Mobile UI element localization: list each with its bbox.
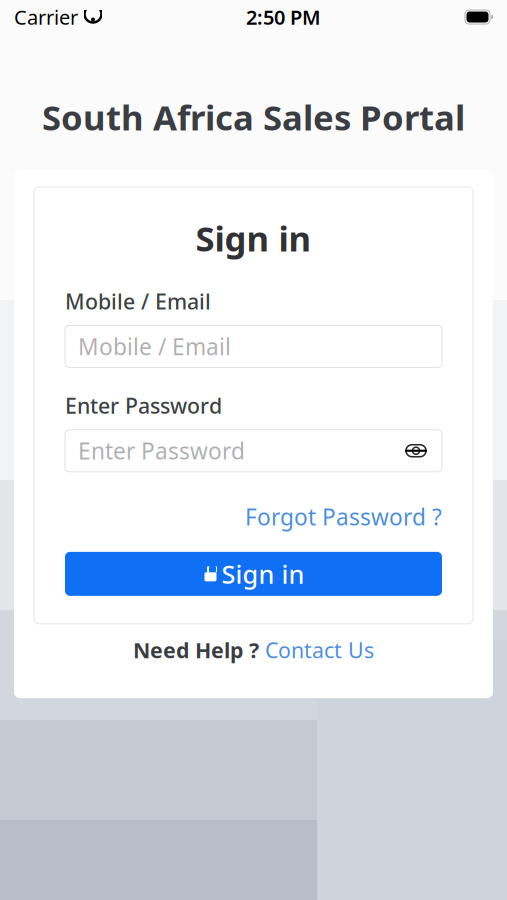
staticText: Carrier <box>14 4 78 30</box>
staticText: Sign in <box>195 215 311 261</box>
button[interactable]: Show password <box>403 438 429 464</box>
staticText: Mobile / Email <box>78 331 231 361</box>
button[interactable]: Sign in <box>65 552 442 596</box>
staticText: Enter Password <box>65 391 222 420</box>
staticText: Contact Us <box>265 636 374 664</box>
staticText: South Africa Sales Portal <box>42 94 465 140</box>
button[interactable]: Forgot Password ? <box>65 496 442 538</box>
staticText: Need Help ? <box>133 636 259 664</box>
staticText: Forgot Password ? <box>245 502 442 532</box>
staticText: Sign in <box>221 557 304 591</box>
staticText: 2:50 PM <box>246 4 321 30</box>
button[interactable]: Need Help ? <box>14 624 493 676</box>
staticText: Mobile / Email <box>65 287 211 315</box>
staticText: Enter Password <box>78 436 245 466</box>
